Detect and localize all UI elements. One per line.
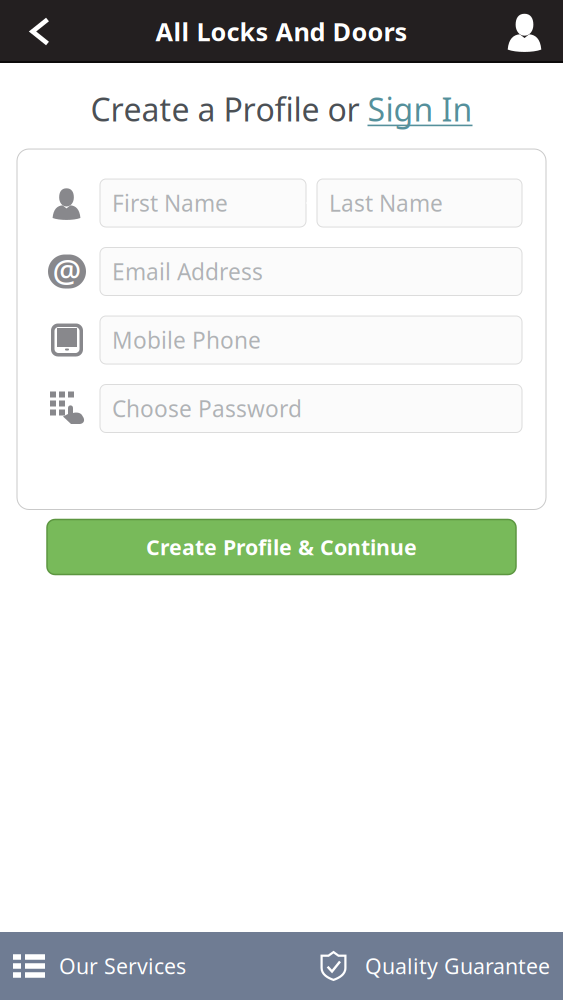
staticText: Sign In [367,88,472,130]
staticText: Mobile Phone [112,325,261,355]
button[interactable]: Email Address [100,247,522,295]
button[interactable]: Create Profile & Continue [47,519,516,574]
button[interactable]: Quality Guarantee [320,932,563,1000]
button[interactable]: Our Services [0,932,186,1000]
button[interactable]: Last Name [317,179,522,227]
button[interactable]: Account [486,0,563,63]
staticText: Create a Profile or [90,88,367,130]
staticText: Quality Guarantee [365,952,550,980]
button[interactable]: Mobile Phone [100,316,522,364]
staticText: Choose Password [112,393,302,423]
button[interactable]: Sign In [367,88,472,130]
button[interactable]: First Name [100,179,306,227]
staticText: First Name [112,188,228,218]
staticText: @ [52,249,81,292]
button[interactable]: Choose Password [100,384,522,432]
staticText: Email Address [112,256,263,286]
staticText: Last Name [329,188,443,218]
staticText: All Locks And Doors [155,15,407,48]
button[interactable]: Back [0,0,72,63]
staticText: Our Services [59,952,186,980]
staticText: Create Profile & Continue [146,533,417,561]
